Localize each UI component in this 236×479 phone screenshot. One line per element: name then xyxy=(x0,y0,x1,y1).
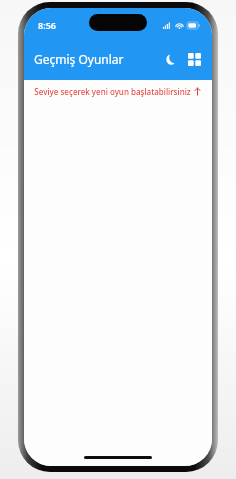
button[interactable]: Gece modu xyxy=(158,47,182,71)
staticText: 8:56 xyxy=(38,19,56,31)
button[interactable]: Seviye seç xyxy=(182,47,206,71)
staticText: Seviye seçerek yeni oyun başlatabilirsin… xyxy=(34,86,191,97)
staticText: Geçmiş Oyunlar xyxy=(34,51,124,67)
